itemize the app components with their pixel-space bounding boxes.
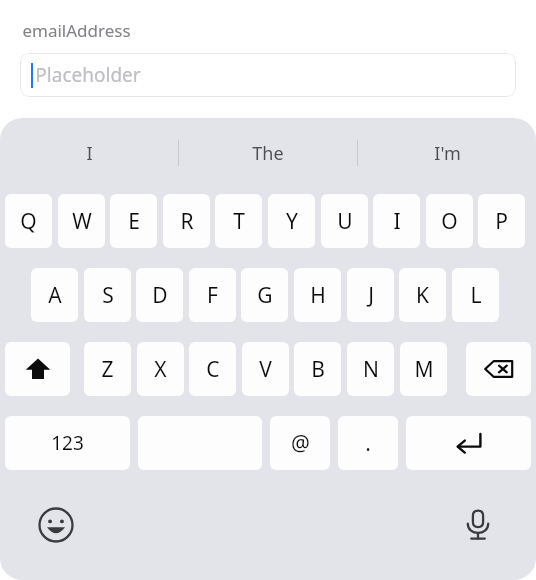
staticText: C bbox=[206, 355, 220, 384]
staticText: L bbox=[470, 281, 482, 310]
button[interactable]: B bbox=[294, 342, 341, 396]
staticText: P bbox=[495, 207, 508, 236]
button[interactable]: Y bbox=[268, 194, 315, 248]
staticText: I'm bbox=[434, 141, 461, 166]
staticText: I bbox=[393, 207, 401, 236]
button[interactable]: emailAddress bbox=[22, 19, 131, 42]
button[interactable]: H bbox=[294, 268, 341, 322]
staticText: B bbox=[311, 355, 325, 384]
button[interactable]: K bbox=[399, 268, 446, 322]
button[interactable]: 123 bbox=[5, 416, 130, 470]
staticText: W bbox=[72, 207, 92, 236]
staticText: . bbox=[365, 429, 371, 458]
button[interactable]: Emoji keyboard bbox=[34, 503, 78, 547]
button[interactable]: U bbox=[321, 194, 368, 248]
staticText: Y bbox=[286, 207, 298, 236]
button[interactable]: L bbox=[452, 268, 499, 322]
button[interactable]: I'm bbox=[358, 118, 536, 188]
button[interactable]: J bbox=[347, 268, 394, 322]
staticText: H bbox=[310, 281, 326, 310]
button[interactable]: C bbox=[189, 342, 236, 396]
staticText: X bbox=[154, 355, 167, 384]
staticText: Z bbox=[101, 355, 114, 384]
button[interactable]: . bbox=[338, 416, 398, 470]
button[interactable]: O bbox=[426, 194, 473, 248]
button[interactable]: Placeholder bbox=[20, 53, 516, 97]
staticText: E bbox=[128, 207, 140, 236]
button[interactable]: Z bbox=[84, 342, 131, 396]
button[interactable]: M bbox=[400, 342, 447, 396]
button[interactable]: The bbox=[179, 118, 357, 188]
staticText: R bbox=[180, 207, 194, 236]
staticText: @ bbox=[291, 429, 310, 458]
staticText: I bbox=[86, 141, 93, 166]
button[interactable]: I bbox=[373, 194, 420, 248]
staticText: 123 bbox=[51, 430, 84, 456]
staticText: Placeholder bbox=[35, 62, 141, 88]
button[interactable]: T bbox=[215, 194, 262, 248]
button[interactable]: Shift bbox=[5, 342, 70, 396]
button[interactable]: S bbox=[84, 268, 131, 322]
staticText: A bbox=[48, 281, 62, 310]
button[interactable]: D bbox=[136, 268, 183, 322]
staticText: M bbox=[414, 355, 434, 384]
staticText: V bbox=[259, 355, 272, 384]
button[interactable]: N bbox=[347, 342, 394, 396]
button[interactable]: P bbox=[478, 194, 525, 248]
staticText: O bbox=[441, 207, 458, 236]
staticText: Q bbox=[20, 207, 37, 236]
staticText: S bbox=[102, 281, 114, 310]
button[interactable]: V bbox=[242, 342, 289, 396]
button[interactable]: G bbox=[241, 268, 288, 322]
staticText: J bbox=[368, 281, 374, 310]
button[interactable]: Return bbox=[406, 416, 531, 470]
button[interactable]: Q bbox=[5, 194, 52, 248]
staticText: T bbox=[233, 207, 245, 236]
button[interactable]: @ bbox=[270, 416, 330, 470]
button[interactable]: Voice input bbox=[456, 503, 500, 547]
staticText: emailAddress bbox=[22, 19, 131, 42]
button[interactable]: A bbox=[31, 268, 78, 322]
staticText: F bbox=[207, 281, 218, 310]
button[interactable]: I bbox=[0, 118, 178, 188]
button[interactable]: X bbox=[137, 342, 184, 396]
button[interactable]: Backspace bbox=[466, 342, 531, 396]
staticText: K bbox=[416, 281, 429, 310]
staticText: D bbox=[152, 281, 168, 310]
staticText: U bbox=[337, 207, 353, 236]
staticText: N bbox=[363, 355, 379, 384]
staticText: G bbox=[257, 281, 273, 310]
button[interactable]: W bbox=[58, 194, 105, 248]
staticText: The bbox=[252, 141, 284, 166]
button[interactable]: F bbox=[189, 268, 236, 322]
button[interactable]: R bbox=[163, 194, 210, 248]
button[interactable]: E bbox=[110, 194, 157, 248]
